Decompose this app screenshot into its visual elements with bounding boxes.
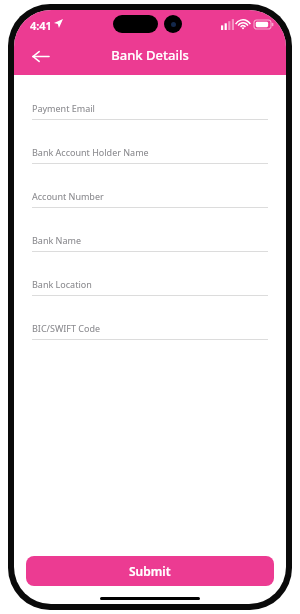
staticText: Payment Email [32,102,95,114]
staticText: Submit [129,563,171,579]
staticText: 4:41 [30,18,52,33]
button[interactable]: Back [24,40,56,72]
staticText: Bank Name [32,234,81,246]
button[interactable]: Payment Email [32,96,268,140]
button[interactable]: Bank Location [32,272,268,316]
staticText: Bank Details [111,46,189,64]
staticText: Bank Location [32,278,92,290]
button[interactable]: Account Number [32,184,268,228]
staticText: Bank Account Holder Name [32,146,149,158]
button[interactable]: Bank Account Holder Name [32,140,268,184]
staticText: Account Number [32,190,104,202]
button[interactable]: Bank Name [32,228,268,272]
button[interactable]: BIC/SWIFT Code [32,316,268,360]
button[interactable]: Submit [26,556,274,586]
staticText: BIC/SWIFT Code [32,322,101,334]
